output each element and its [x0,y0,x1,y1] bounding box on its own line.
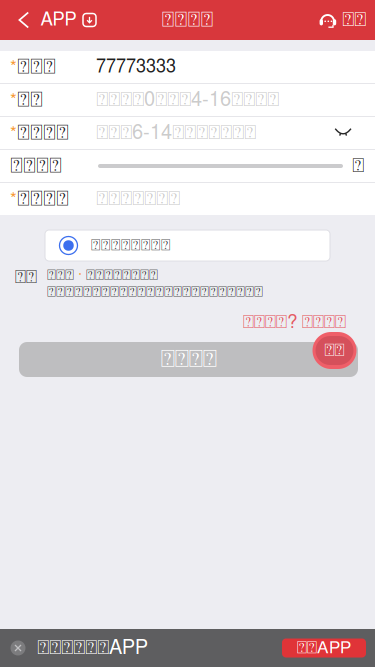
staticText: ⍰⍰⍰⍰ [17,122,69,144]
staticText: ⍰⍰ [15,268,37,287]
staticText: ⍰⍰⍰ [17,56,56,78]
staticText: ⍰⍰⍰ [47,268,74,283]
staticText: ⍰⍰⍰⍰⍰⍰APP [37,638,148,658]
staticText: ⍰⍰⍰⍰⍰⍰⍰⍰ [91,237,171,253]
staticText: ⍰⍰ [324,342,344,359]
staticText: ⍰ [352,156,364,176]
button[interactable]: ⍰⍰APP [282,638,366,657]
staticText: ⍰⍰⍰⍰⍰⍰⍰⍰⍰⍰⍰⍰⍰⍰⍰⍰⍰⍰⍰⍰⍰⍰⍰⍰ [47,285,263,299]
staticText: ⍰⍰⍰6-14⍰⍰⍰⍰⍰⍰⍰ [96,123,256,143]
button[interactable]: APP [0,0,104,40]
staticText: * [10,91,17,109]
button[interactable]: Show password [335,128,351,137]
staticText: ⍰⍰⍰⍰⍰⍰⍰⍰ [86,268,158,283]
button[interactable]: ⍰⍰⍰⍰? ⍰⍰⍰⍰ [243,313,346,332]
button[interactable]: ⍰⍰ [312,332,356,369]
staticText: ⍰⍰⍰⍰0⍰⍰⍰4-16⍰⍰⍰⍰ [96,90,279,110]
staticText: ⍰⍰ [17,89,43,111]
staticText: ⍰⍰⍰⍰⍰⍰⍰ [96,189,180,209]
staticText: APP [40,11,76,29]
staticText: ⍰⍰⍰⍰ [160,347,216,371]
staticText: * [10,190,17,208]
staticText: ⍰⍰⍰⍰ [10,155,62,177]
button[interactable]: Close [10,640,26,656]
staticText: ⍰⍰⍰⍰ [161,9,213,31]
staticText: ⍰⍰⍰⍰ [17,188,69,210]
staticText: * [10,124,17,142]
button[interactable]: ⍰⍰ [310,0,375,40]
staticText: · [74,268,86,283]
staticText: ⍰⍰APP [297,639,351,657]
staticText: 77773333 [96,58,176,76]
staticText: ⍰⍰ [342,10,366,30]
button[interactable]: ⍰⍰⍰⍰⍰⍰⍰⍰ [45,230,330,261]
staticText: * [10,58,17,76]
button[interactable]: ⍰⍰⍰⍰ [19,342,358,377]
staticText: ⍰⍰⍰⍰? ⍰⍰⍰⍰ [243,313,346,332]
